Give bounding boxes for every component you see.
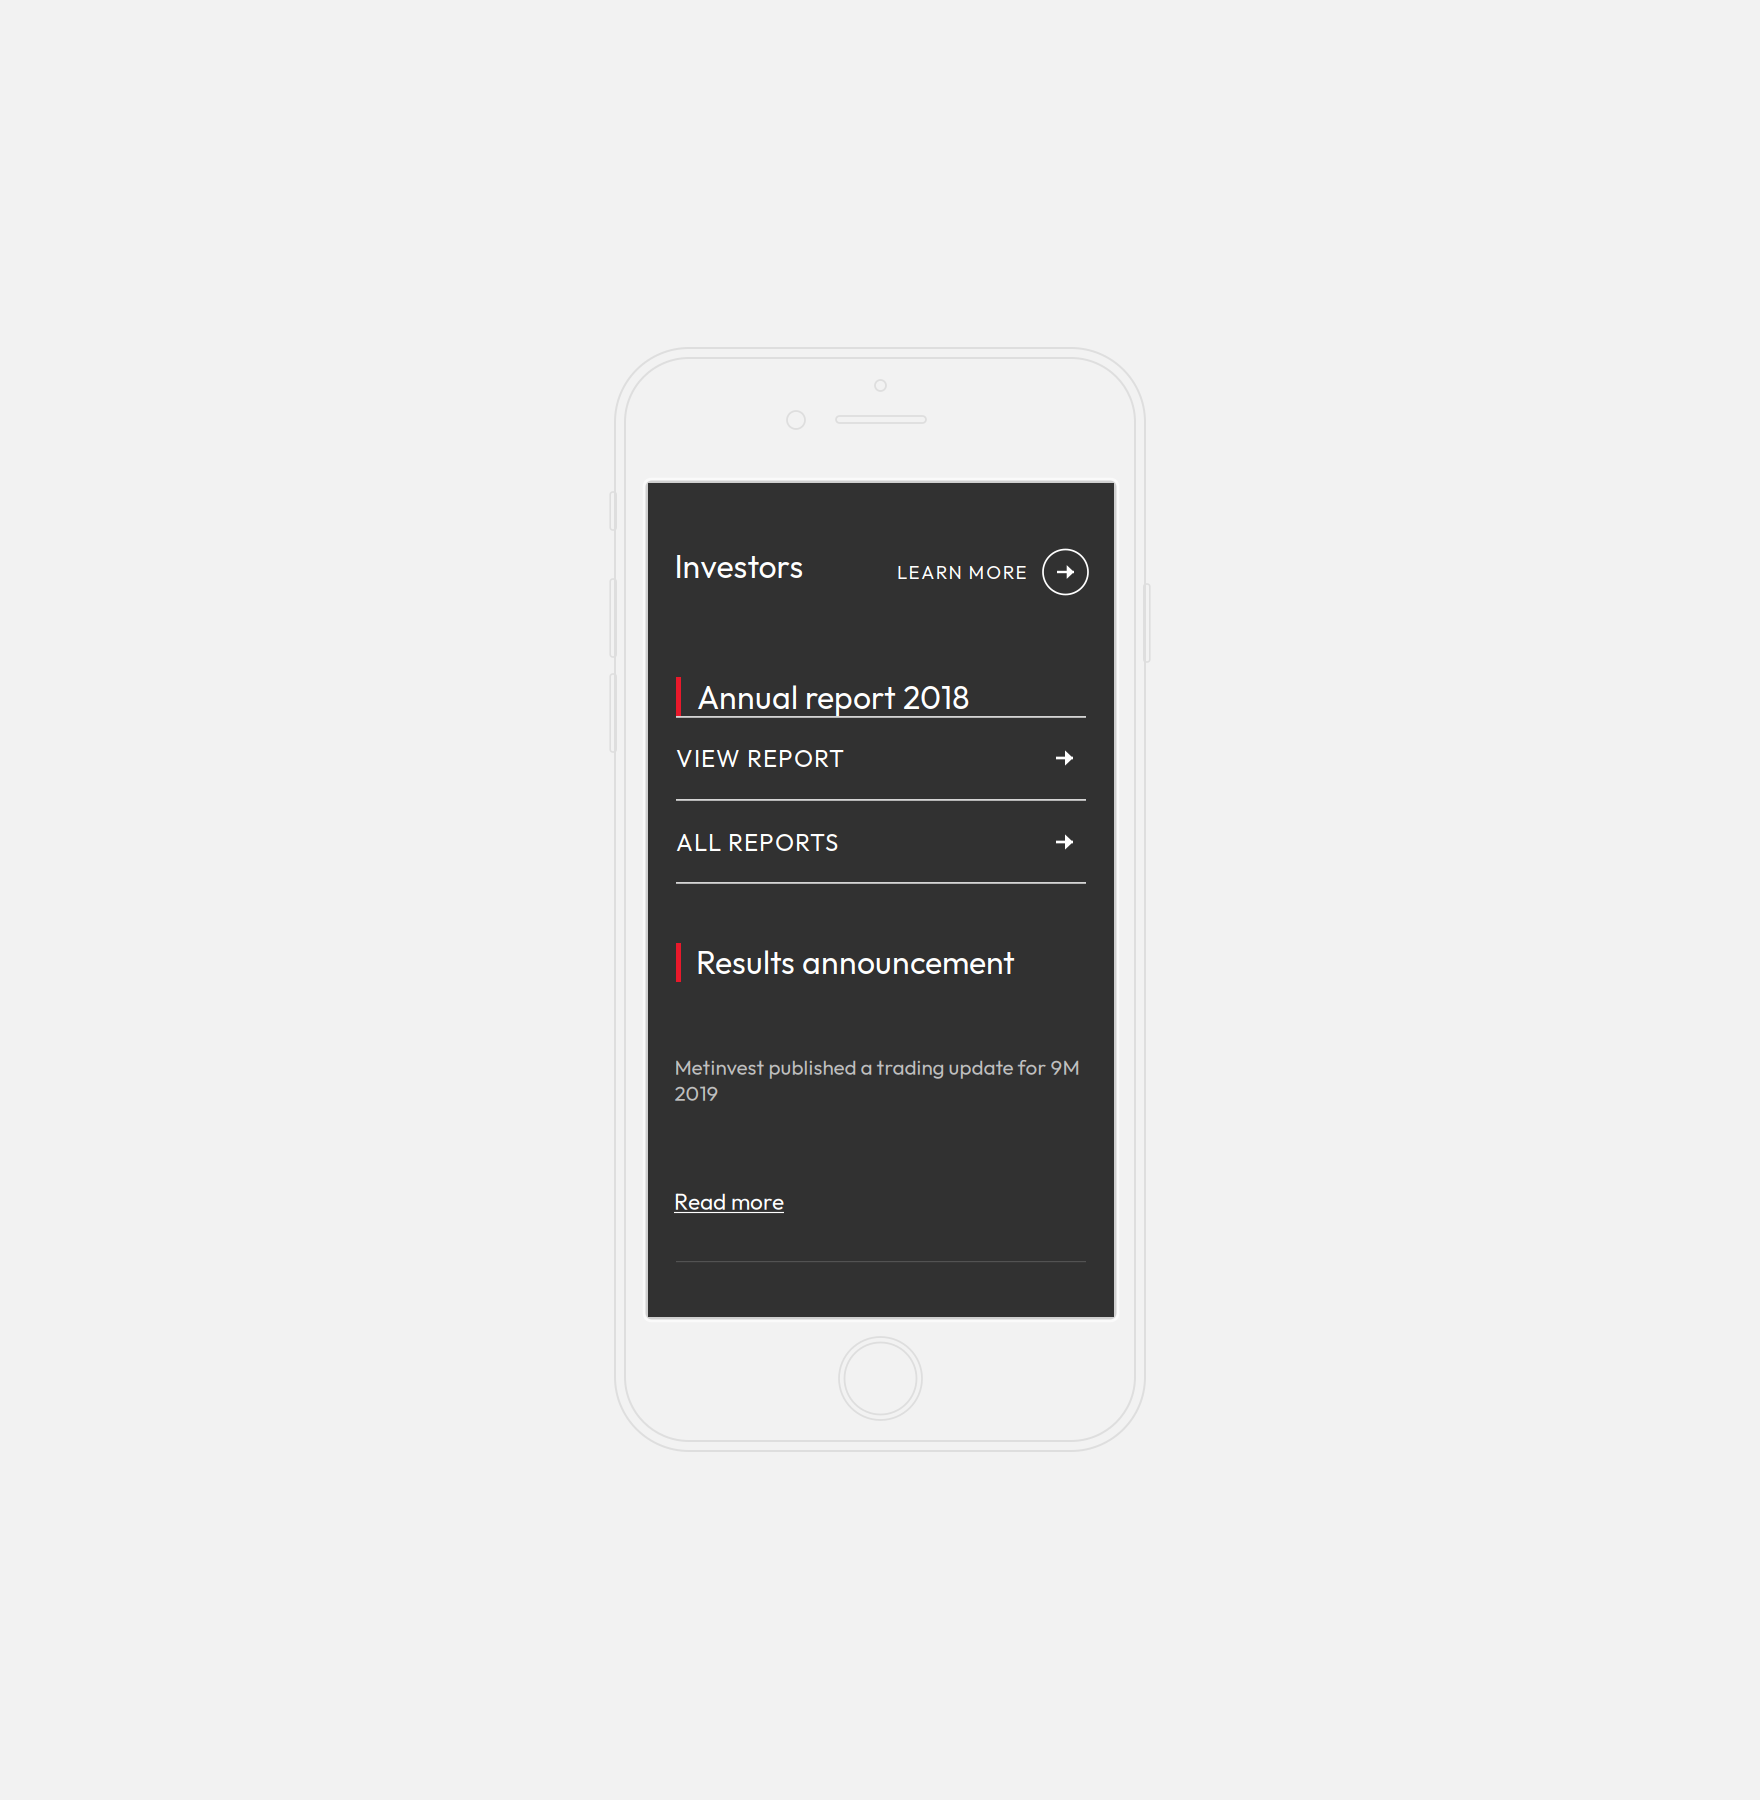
staticText: ALL REPORTS [676, 827, 838, 857]
button[interactable]: ALL REPORTS [676, 801, 1086, 883]
staticText: Read more [674, 1187, 784, 1216]
staticText: VIEW REPORT [676, 743, 844, 773]
button[interactable]: Read more [674, 1187, 784, 1216]
staticText: Results announcement [696, 942, 1015, 982]
staticText: Metinvest published a trading update for… [674, 1054, 1079, 1106]
staticText: Investors [674, 546, 803, 586]
staticText: Annual report 2018 [697, 677, 970, 717]
staticText: LEARN MORE [897, 560, 1026, 584]
button[interactable]: LEARN MORE [897, 549, 1088, 594]
button[interactable]: VIEW REPORT [676, 717, 1086, 799]
